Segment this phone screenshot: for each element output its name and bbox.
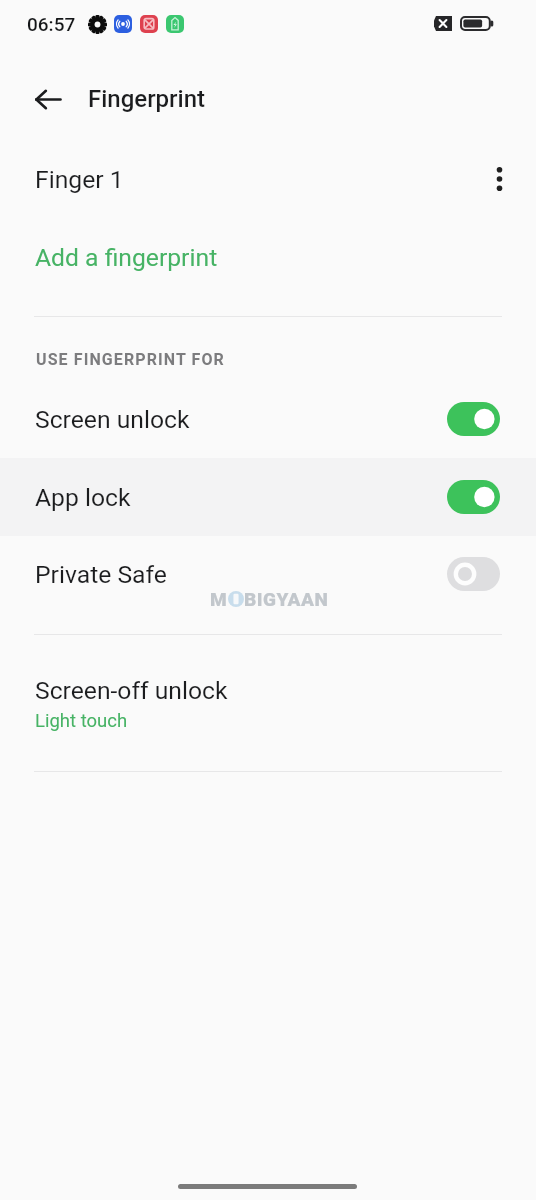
- staticText: M: [210, 588, 228, 610]
- staticText: USE FINGERPRINT FOR: [36, 350, 225, 369]
- staticText: 06:57: [27, 13, 76, 35]
- button[interactable]: App lock: [0, 458, 536, 536]
- staticText: BIGYAAN: [244, 588, 329, 610]
- staticText: Finger 1: [35, 165, 124, 194]
- staticText: App lock: [35, 483, 131, 512]
- button[interactable]: Private Safe: [0, 535, 536, 613]
- staticText: Screen unlock: [35, 405, 190, 434]
- button[interactable]: Add a fingerprint: [0, 224, 536, 284]
- button[interactable]: Back: [25, 77, 70, 122]
- button[interactable]: Screen-off unlock: [0, 656, 536, 756]
- button[interactable]: Screen unlock: [0, 380, 536, 458]
- button[interactable]: Finger 1: [0, 146, 536, 208]
- staticText: Fingerprint: [88, 85, 206, 113]
- staticText: Add a fingerprint: [35, 243, 218, 272]
- staticText: Light touch: [35, 710, 128, 732]
- button[interactable]: More options: [479, 159, 519, 199]
- staticText: Screen-off unlock: [35, 676, 228, 705]
- staticText: Private Safe: [35, 560, 167, 589]
